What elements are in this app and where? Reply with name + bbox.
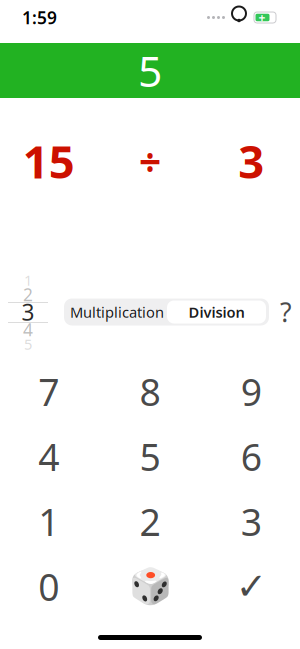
button[interactable]: 2 [99, 489, 201, 554]
staticText: 5 [138, 42, 162, 99]
staticText: 2 [139, 497, 160, 546]
staticText: 3 [21, 297, 34, 327]
staticText: 7 [38, 367, 59, 416]
staticText: 1:59 [22, 6, 57, 29]
button[interactable]: Help [277, 297, 295, 327]
button[interactable]: 9 [201, 359, 300, 424]
staticText: + [258, 9, 265, 25]
button[interactable]: 8 [99, 359, 201, 424]
button[interactable]: New random question [99, 554, 201, 619]
button[interactable]: 6 [201, 424, 300, 489]
staticText: ✓ [236, 565, 267, 608]
button[interactable]: Multiplication [67, 300, 167, 323]
staticText: Multiplication [70, 302, 164, 322]
button[interactable]: Check answer [201, 554, 300, 619]
button[interactable]: 1 [0, 489, 99, 554]
staticText: 3 [241, 497, 262, 546]
button[interactable]: 4 [0, 424, 99, 489]
staticText: 6 [241, 432, 262, 481]
staticText: 5 [24, 334, 32, 354]
button[interactable]: 5 [99, 424, 201, 489]
staticText: 4 [38, 432, 59, 481]
staticText: 🎲 [128, 567, 171, 606]
staticText: 2 [23, 283, 33, 306]
staticText: 1 [24, 270, 32, 290]
button[interactable]: Division [167, 300, 266, 323]
staticText: 5 [139, 432, 160, 481]
staticText: ? [280, 294, 292, 330]
button[interactable]: 0 [0, 554, 99, 619]
staticText: 4 [23, 318, 33, 341]
staticText: Division [188, 302, 244, 322]
staticText: 8 [139, 367, 160, 416]
staticText: 3 [238, 131, 264, 191]
button[interactable]: 3 [201, 489, 300, 554]
button[interactable]: 7 [0, 359, 99, 424]
staticText: 15 [23, 131, 75, 191]
staticText: 1 [38, 497, 59, 546]
staticText: 9 [241, 367, 262, 416]
staticText: 0 [38, 562, 59, 611]
staticText: ÷ [139, 135, 161, 187]
